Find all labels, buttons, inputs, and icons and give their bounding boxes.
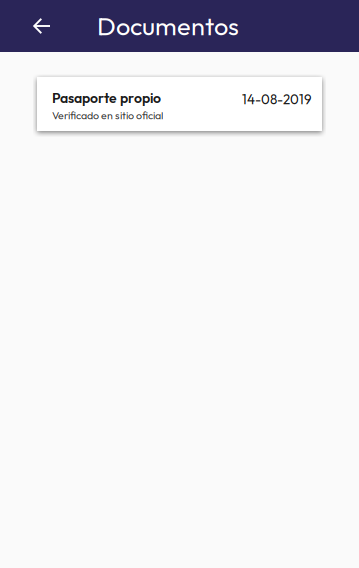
button[interactable]: Back <box>0 0 68 52</box>
button[interactable]: Pasaporte propio <box>37 77 322 131</box>
staticText: Verificado en sitio oficial <box>52 109 163 122</box>
staticText: Pasaporte propio <box>52 89 161 107</box>
staticText: 14-08-2019 <box>242 91 312 108</box>
staticText: Documentos <box>97 10 239 42</box>
